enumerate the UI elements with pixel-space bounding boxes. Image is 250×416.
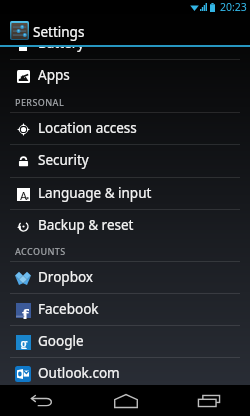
button[interactable]: Backup & reset	[0, 210, 250, 242]
button[interactable]: Back	[0, 385, 84, 416]
button[interactable]: A	[0, 178, 250, 210]
staticText: 20:23	[220, 0, 247, 14]
button[interactable]: g	[0, 326, 250, 358]
staticText: g	[20, 334, 28, 349]
staticText: Backup & reset	[38, 216, 134, 234]
button[interactable]: Recent apps	[167, 385, 250, 416]
button[interactable]: Home	[84, 385, 167, 416]
button[interactable]: Settings	[0, 14, 250, 45]
staticText: Apps	[38, 66, 70, 84]
staticText: ACCOUNTS	[15, 245, 66, 257]
staticText: Settings	[33, 23, 85, 41]
staticText: Dropbox	[38, 268, 93, 286]
button[interactable]: Battery	[0, 28, 250, 60]
button[interactable]: f	[0, 294, 250, 326]
button[interactable]: Dropbox	[0, 262, 250, 294]
staticText: A	[20, 188, 28, 201]
staticText: f	[22, 304, 29, 319]
staticText: Language & input	[38, 184, 152, 202]
staticText: Security	[38, 151, 89, 169]
button[interactable]: Security	[0, 145, 250, 177]
staticText: Outlook.com	[38, 364, 120, 382]
staticText: Facebook	[38, 300, 99, 318]
staticText: Google	[38, 332, 84, 350]
staticText: Location access	[38, 119, 137, 137]
button[interactable]: Apps	[0, 60, 250, 92]
staticText: PERSONAL	[15, 96, 65, 108]
staticText: Battery	[38, 34, 85, 52]
button[interactable]: Location access	[0, 113, 250, 145]
button[interactable]: Outlook.com	[0, 358, 250, 385]
